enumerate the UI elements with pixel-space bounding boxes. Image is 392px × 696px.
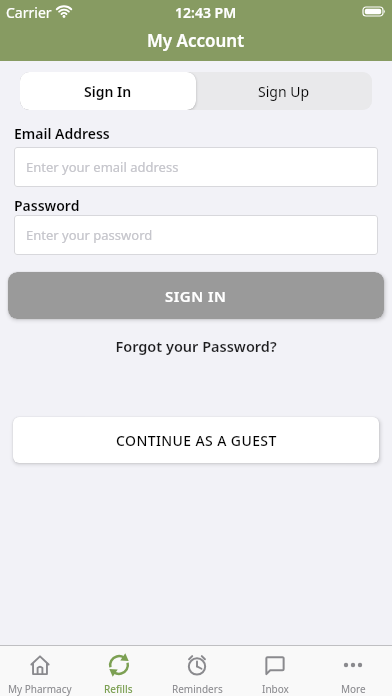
button[interactable]: CONTINUE AS A GUEST xyxy=(13,417,379,463)
staticText: Carrier xyxy=(6,3,52,20)
button[interactable]: Enter your password xyxy=(14,215,378,255)
staticText: Password xyxy=(14,196,80,215)
staticText: My Account xyxy=(147,29,245,52)
staticText: More xyxy=(341,682,366,696)
staticText: CONTINUE AS A GUEST xyxy=(116,431,277,450)
button[interactable]: SIGN IN xyxy=(8,272,384,319)
staticText: Sign In xyxy=(84,82,132,101)
button[interactable]: Sign Up xyxy=(196,72,372,110)
staticText: Refills xyxy=(104,682,133,696)
staticText: 12:43 PM xyxy=(175,3,237,20)
button[interactable]: Inbox xyxy=(236,646,314,696)
button[interactable]: More xyxy=(314,646,392,696)
button[interactable]: Reminders xyxy=(158,646,236,696)
staticText: Enter your password xyxy=(26,226,153,244)
staticText: Enter your email address xyxy=(26,158,179,176)
button[interactable]: Forgot your Password? xyxy=(0,336,392,356)
staticText: Email Address xyxy=(14,124,110,143)
staticText: Reminders xyxy=(172,682,223,696)
button[interactable]: Enter your email address xyxy=(14,147,378,187)
button[interactable]: Sign In xyxy=(20,72,196,110)
staticText: Sign Up xyxy=(258,82,310,101)
staticText: SIGN IN xyxy=(165,286,227,306)
staticText: My Pharmacy xyxy=(8,682,72,696)
button[interactable]: My Pharmacy xyxy=(0,646,79,696)
button[interactable]: Refills xyxy=(79,646,158,696)
staticText: Inbox xyxy=(262,682,289,696)
